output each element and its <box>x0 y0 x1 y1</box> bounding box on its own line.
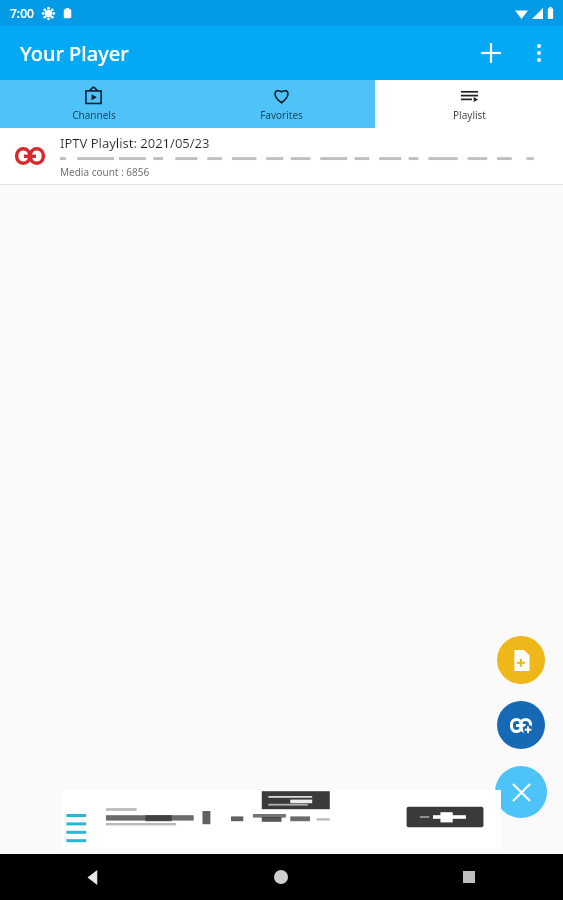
button[interactable]: Recent apps <box>375 854 563 900</box>
button[interactable]: Favorites <box>187 80 375 128</box>
staticText: IPTV Playlist: 2021/05/23 <box>60 134 210 152</box>
staticText: Favorites <box>260 108 303 122</box>
button[interactable]: IPTV Playlist: 2021/05/23 <box>0 128 563 184</box>
button[interactable]: Advertisement <box>62 790 501 850</box>
staticText: 7:00 <box>10 5 34 21</box>
button[interactable]: Add link playlist <box>497 701 545 749</box>
staticText: Channels <box>72 108 116 122</box>
button[interactable]: Back <box>0 854 187 900</box>
button[interactable]: Add <box>467 29 515 77</box>
staticText: Your Player <box>20 40 129 67</box>
button[interactable]: Home <box>187 854 375 900</box>
staticText: Media count : 6856 <box>60 165 150 179</box>
staticText: Playlist <box>453 108 486 122</box>
button[interactable]: Add file playlist <box>497 636 545 684</box>
button[interactable]: Channels <box>0 80 187 128</box>
button[interactable]: More options <box>515 29 563 77</box>
button[interactable]: Close <box>495 766 547 818</box>
button[interactable]: Playlist <box>375 80 563 128</box>
